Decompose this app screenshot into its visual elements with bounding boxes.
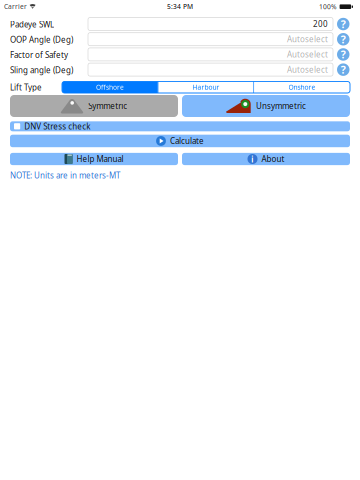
- button[interactable]: Help about Padeye SWL: [337, 18, 349, 30]
- staticText: Calculate: [170, 136, 204, 146]
- button[interactable]: Offshore: [62, 81, 158, 93]
- staticText: ?: [341, 17, 346, 31]
- staticText: 200: [313, 19, 328, 29]
- staticText: DNV Stress check: [24, 121, 90, 132]
- staticText: Autoselect: [287, 49, 328, 60]
- staticText: Autoselect: [287, 64, 328, 75]
- staticText: Autoselect: [287, 34, 328, 44]
- staticText: 100%: [319, 2, 337, 11]
- staticText: ?: [341, 32, 346, 46]
- button[interactable]: Harbour: [159, 81, 253, 93]
- staticText: Symmetric: [88, 101, 127, 111]
- button[interactable]: Help about Factor of Safety: [337, 48, 349, 61]
- button[interactable]: Help about Sling angle: [337, 63, 349, 76]
- staticText: Sling angle (Deg): [10, 65, 73, 75]
- staticText: Padeye SWL: [10, 19, 54, 30]
- button[interactable]: Help Manual: [10, 153, 178, 165]
- button[interactable]: Onshore: [254, 81, 350, 93]
- button[interactable]: DNV Stress check: [10, 121, 350, 131]
- staticText: 5:34 PM: [167, 2, 193, 11]
- staticText: i: [251, 153, 254, 165]
- staticText: Unsymmetric: [256, 101, 306, 111]
- button[interactable]: Calculate: [10, 135, 350, 147]
- staticText: Factor of Safety: [10, 50, 68, 60]
- staticText: NOTE: Units are in meters-MT: [10, 170, 120, 181]
- button[interactable]: Unsymmetric: [182, 95, 350, 117]
- staticText: Harbour: [192, 83, 219, 92]
- staticText: Lift Type: [10, 82, 42, 93]
- staticText: Carrier: [4, 2, 27, 11]
- staticText: ?: [341, 63, 346, 77]
- staticText: ?: [341, 47, 346, 62]
- staticText: OOP Angle (Deg): [10, 34, 73, 45]
- staticText: Help Manual: [76, 154, 123, 164]
- button[interactable]: Symmetric: [10, 95, 178, 117]
- button[interactable]: Help about OOP Angle: [337, 33, 349, 45]
- staticText: About: [261, 154, 284, 164]
- button[interactable]: i: [182, 153, 350, 165]
- staticText: Onshore: [289, 83, 316, 92]
- staticText: Offshore: [96, 83, 124, 92]
